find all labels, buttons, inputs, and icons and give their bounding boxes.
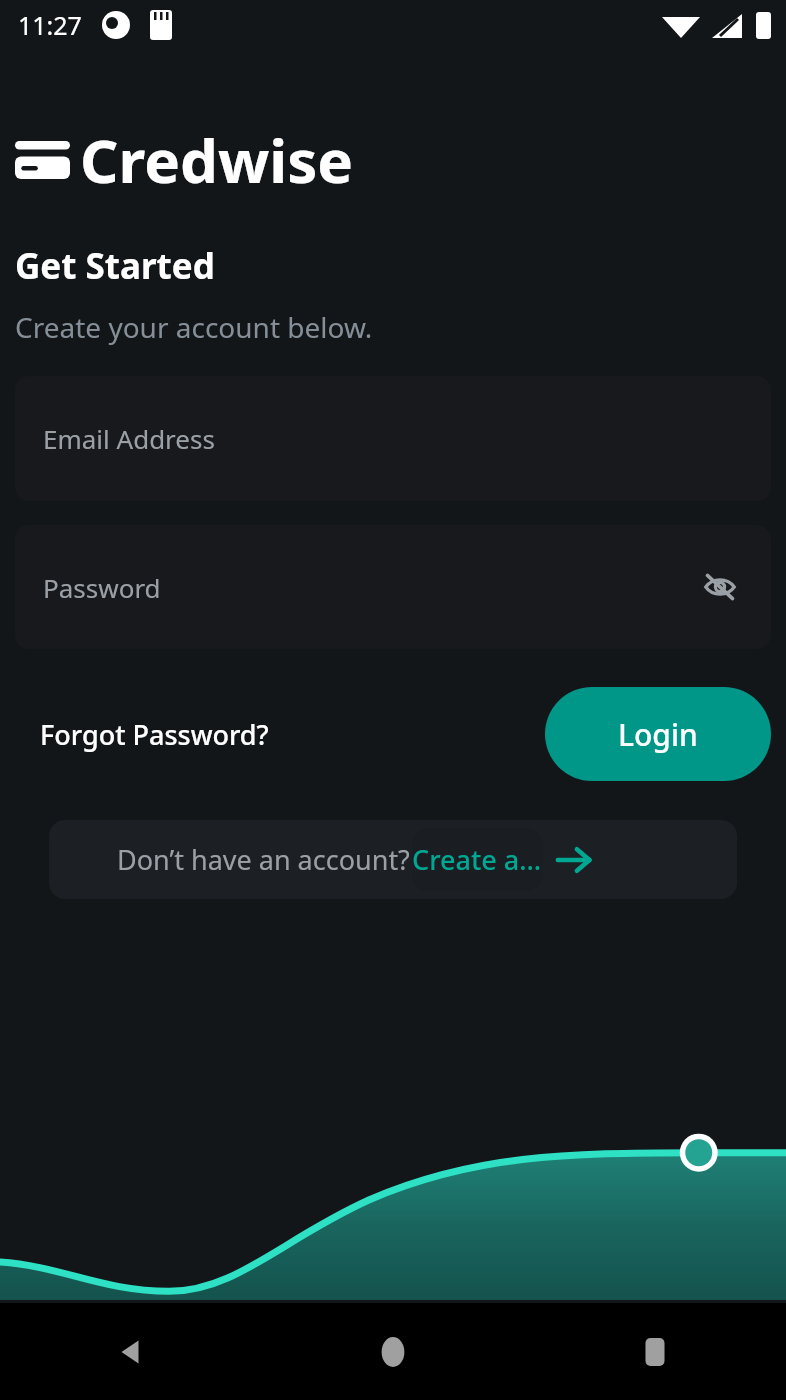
- staticText: Get Started: [15, 242, 215, 290]
- button[interactable]: Login: [545, 687, 771, 781]
- button[interactable]: Recent apps: [524, 1303, 786, 1400]
- staticText: Forgot Password?: [40, 716, 269, 753]
- button[interactable]: Don’t have an account?: [49, 820, 737, 899]
- button[interactable]: Create account: [552, 838, 596, 882]
- staticText: Login: [618, 714, 698, 755]
- staticText: Credwise: [80, 119, 354, 201]
- button[interactable]: Create account: [412, 828, 542, 891]
- button[interactable]: Email Address: [15, 376, 771, 501]
- button[interactable]: Home: [262, 1303, 524, 1400]
- button[interactable]: Show password: [697, 564, 743, 610]
- staticText: Don’t have an account?: [117, 841, 410, 878]
- staticText: 11:27: [18, 8, 82, 42]
- button[interactable]: Password: [15, 525, 771, 649]
- button[interactable]: Forgot Password?: [15, 706, 279, 763]
- button[interactable]: Back: [0, 1303, 262, 1400]
- staticText: Email Address: [43, 421, 215, 456]
- staticText: Create your account below.: [15, 308, 373, 346]
- staticText: Create account: [412, 841, 542, 878]
- staticText: Password: [43, 570, 161, 605]
